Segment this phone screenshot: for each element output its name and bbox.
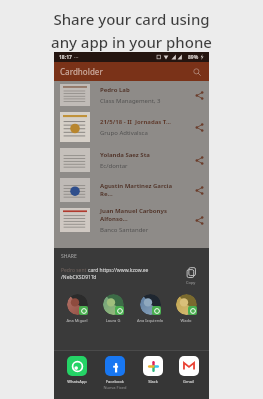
staticText: Yolanda Saez Sta [100,151,150,159]
staticText: Nueva Fixed [96,385,134,390]
staticText: Banco Santander [100,226,149,234]
button[interactable]: Facebook [96,356,134,390]
staticText: 18:17 [59,54,72,61]
button[interactable]: Agustin Martinez Garcia Re... [54,175,209,205]
button[interactable]: Ana Izquierdo [133,294,167,323]
staticText: Pedro Lab [100,86,130,94]
button[interactable]: Gmail [172,356,205,384]
button[interactable]: Share [189,81,209,109]
staticText: Facebook [96,379,134,384]
staticText: 89% [188,54,199,61]
staticText: /NebCKSD91Td [61,274,97,281]
button[interactable]: Ana Miguel [60,294,94,323]
staticText: Copy [186,280,196,285]
button[interactable]: Slack [134,356,172,384]
staticText: Grupo Adtivalsca [100,129,148,137]
staticText: Agustin Martinez Garcia Re... [100,182,185,198]
staticText: Cardholder [60,66,103,77]
button[interactable]: Share [189,205,209,235]
staticText: 21/5/18 - II Jornadas T... [100,118,171,126]
staticText: Ana Izquierdo [133,318,167,323]
staticText: Class Management, 3 [100,97,161,105]
staticText: ••• [74,55,79,60]
button[interactable]: Laura G [96,294,130,323]
staticText: Ana Miguel [60,318,94,323]
button[interactable]: Wado [169,294,203,323]
staticText: card https://www.kzow.ee [88,267,149,274]
staticText: Share your card using [53,9,210,29]
staticText: SHARE [61,253,77,260]
button[interactable]: Search [191,66,203,78]
button[interactable]: Copy [180,267,202,285]
button[interactable]: Yolanda Saez Sta [54,145,209,175]
staticText: Juan Manuel Carbonys Alfonso... [100,207,185,223]
button[interactable]: Share [189,109,209,145]
staticText: Laura G [96,318,130,323]
button[interactable]: WhatsApp [58,356,96,384]
button[interactable]: Pedro Lab [54,81,209,109]
staticText: Pedro sent [61,267,88,274]
staticText: any app in your phone [51,32,212,52]
button[interactable]: Share [189,175,209,205]
staticText: WhatsApp [58,379,96,384]
button[interactable]: 21/5/18 - II Jornadas T... [54,109,209,145]
button[interactable]: Juan Manuel Carbonys Alfonso... [54,205,209,235]
staticText: Ec/dontar [100,162,128,170]
button[interactable]: Share [189,145,209,175]
staticText: Gmail [172,379,205,384]
staticText: Wado [169,318,203,323]
staticText: Slack [134,379,172,384]
